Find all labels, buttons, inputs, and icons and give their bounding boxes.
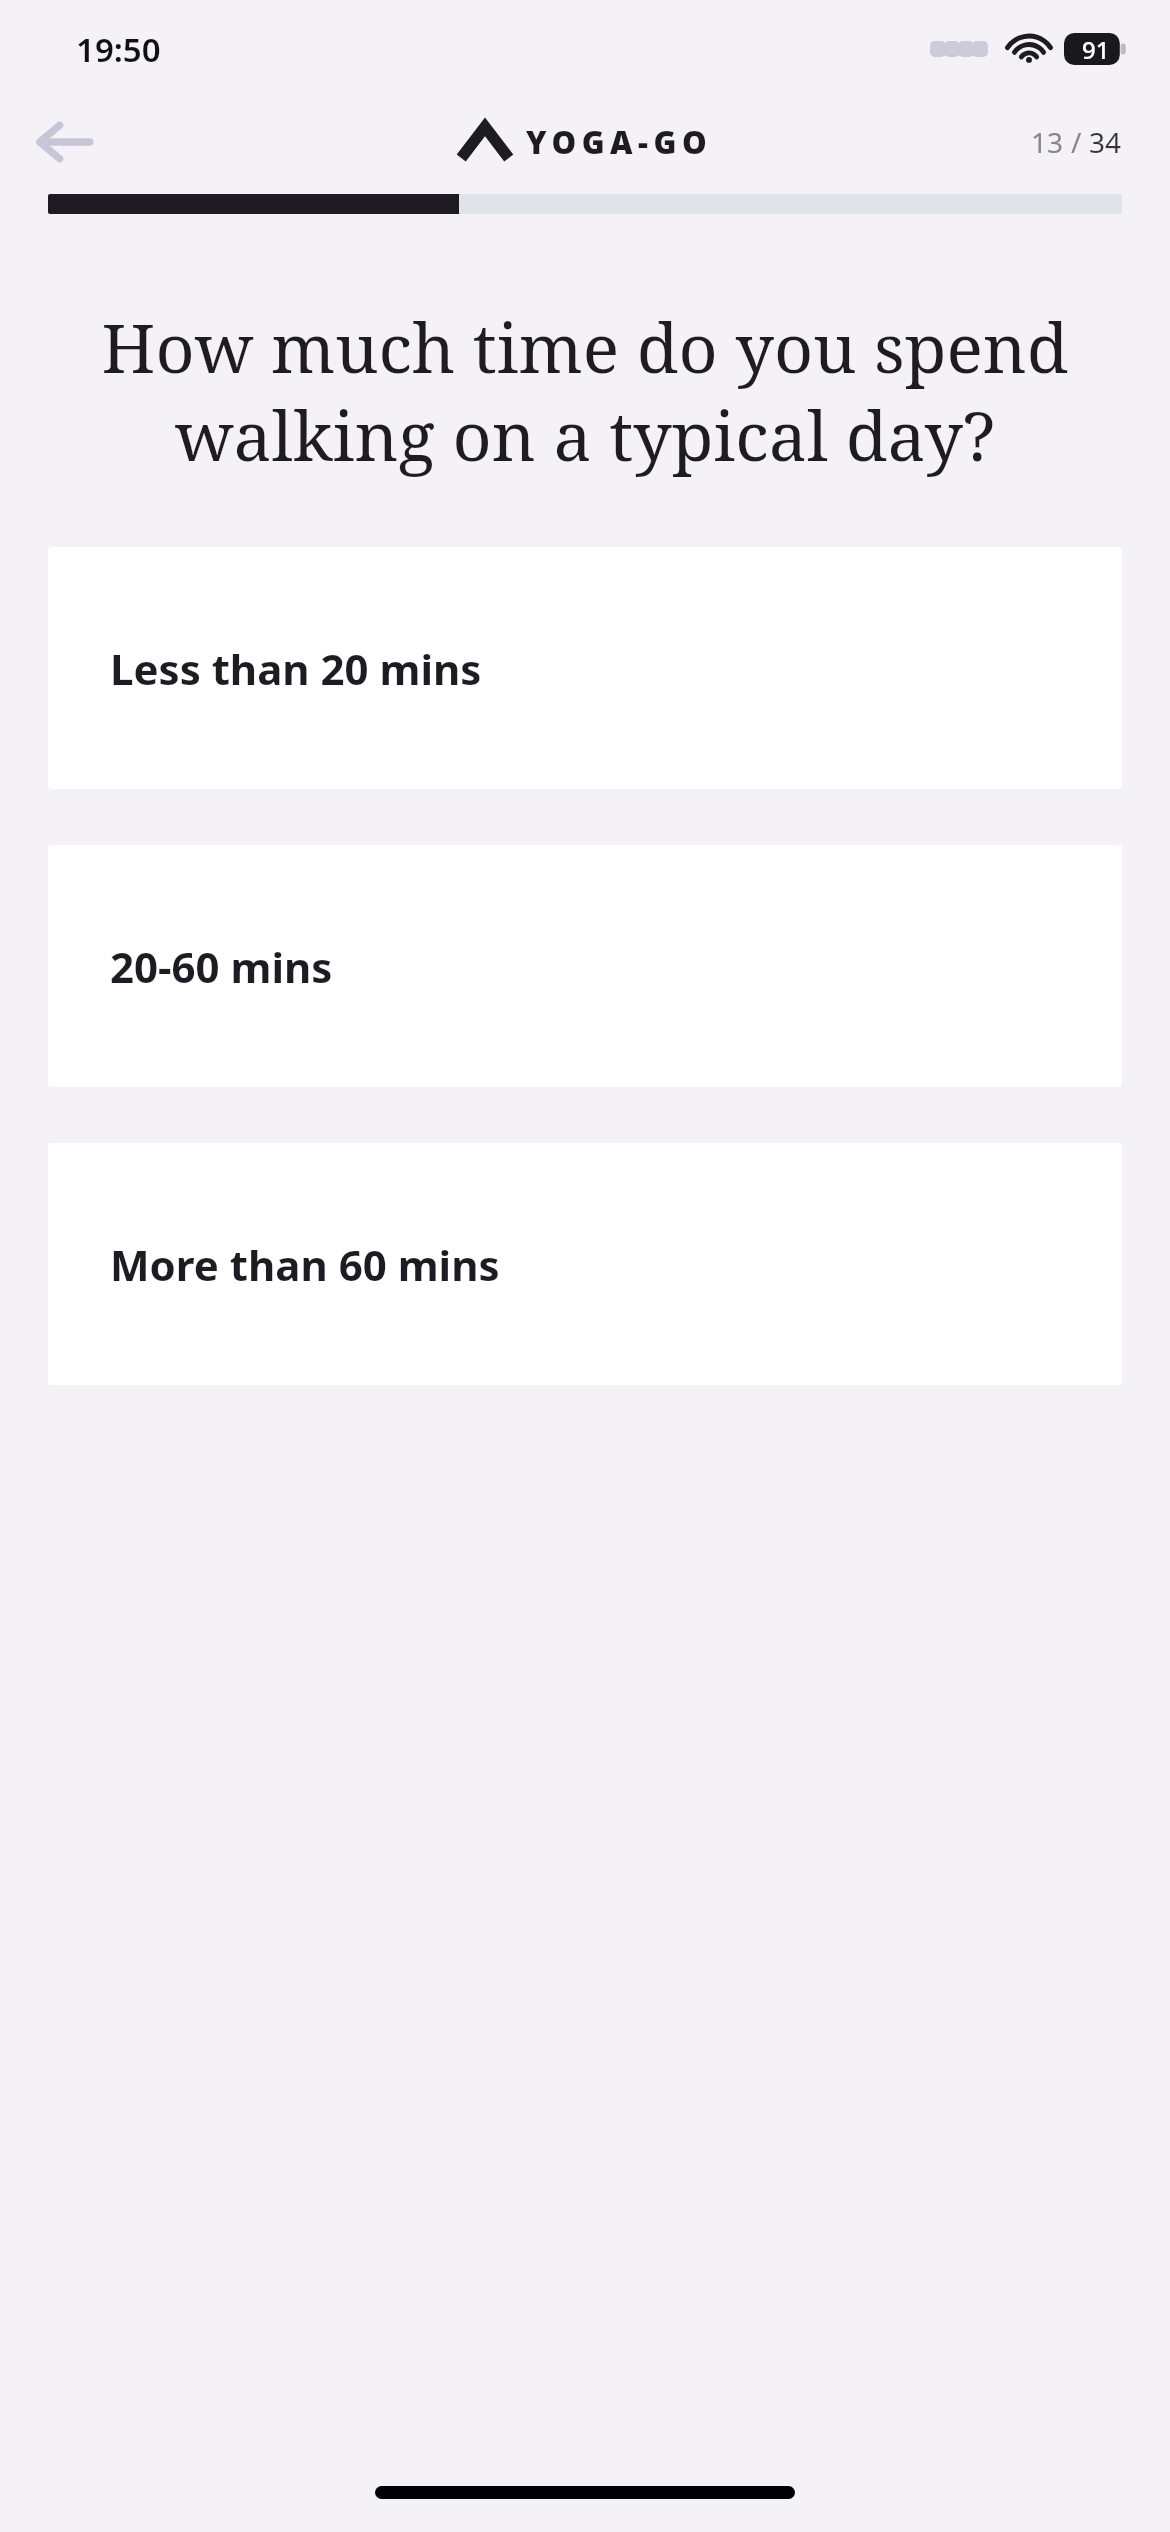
staticText: 34 (1089, 123, 1122, 161)
staticText: 19:50 (76, 27, 161, 72)
staticText: 91 (1082, 33, 1110, 66)
button[interactable]: Less than 20 mins (48, 547, 1122, 789)
button[interactable]: Back (26, 104, 102, 180)
staticText: 13 (1031, 123, 1071, 161)
button[interactable]: 20-60 mins (48, 845, 1122, 1087)
button[interactable]: More than 60 mins (48, 1143, 1122, 1385)
staticText: YOGA-GO (526, 121, 713, 163)
staticText: Less than 20 mins (110, 640, 482, 697)
staticText: More than 60 mins (110, 1236, 500, 1293)
staticText: / (1071, 123, 1089, 161)
staticText: How much time do you spend walking on a … (38, 300, 1132, 481)
staticText: 20-60 mins (110, 938, 333, 995)
